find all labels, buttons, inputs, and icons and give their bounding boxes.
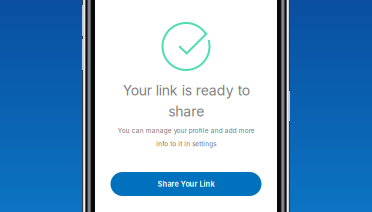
staticText: You can manage your profile and add more… bbox=[117, 127, 254, 148]
staticText: Your link is ready to share bbox=[122, 82, 249, 120]
button[interactable]: Share Your Link bbox=[110, 172, 261, 196]
staticText: Share Your Link bbox=[157, 180, 214, 188]
